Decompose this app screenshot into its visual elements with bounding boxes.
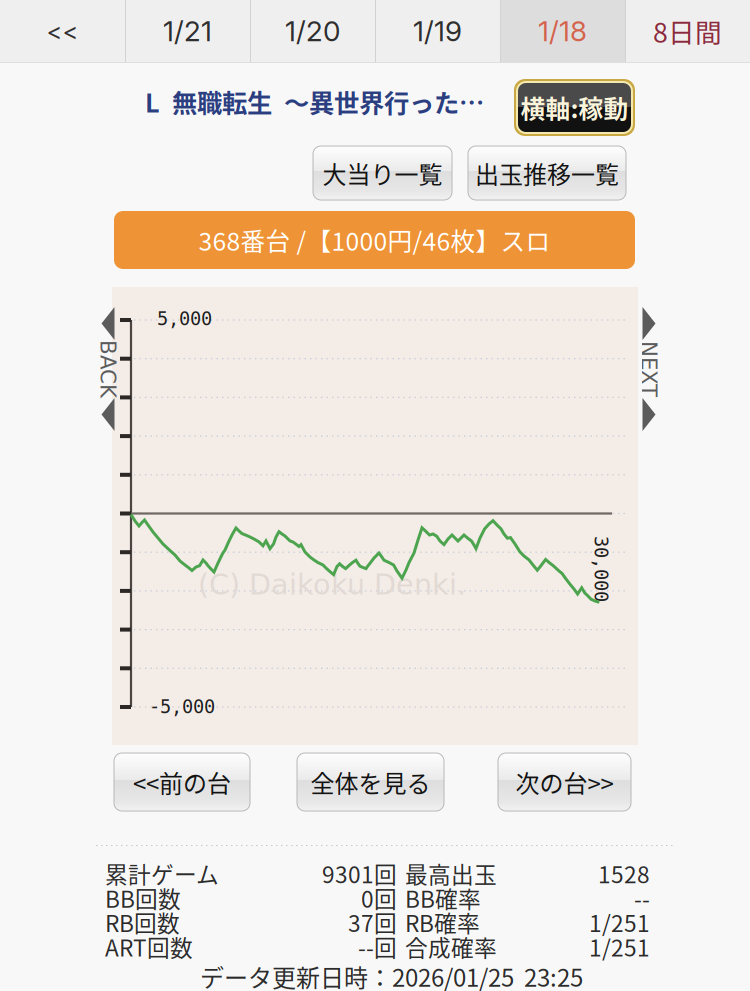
staticText: L 無職転生 〜異世界行った…	[145, 83, 484, 120]
staticText: 1/251	[589, 906, 650, 939]
staticText: 横軸:稼動	[520, 90, 628, 125]
staticText: 最高出玉	[405, 857, 497, 890]
staticText: 5,000	[157, 308, 212, 330]
staticText: 全体を見る	[310, 765, 430, 799]
button[interactable]: 1/21	[125, 0, 250, 62]
button[interactable]: 1/19	[375, 0, 500, 62]
staticText: 累計ゲーム	[105, 857, 219, 890]
staticText: 0回	[361, 881, 397, 914]
button[interactable]: <<前の台	[114, 753, 250, 811]
button[interactable]: 全体を見る	[297, 753, 444, 811]
staticText: 368番台 /【1000円/46枚】スロ	[198, 222, 550, 258]
staticText: NEXT	[621, 357, 677, 381]
staticText: (C) Daikoku Denki.	[198, 568, 466, 601]
staticText: BACK	[79, 357, 137, 381]
staticText: RB確率	[405, 906, 480, 939]
button[interactable]: 横軸:稼動	[514, 79, 635, 136]
button[interactable]: Back	[98, 307, 118, 431]
staticText: --	[634, 881, 650, 914]
button[interactable]: 大当り一覧	[313, 146, 452, 200]
button[interactable]: 1/20	[250, 0, 375, 62]
button[interactable]: Next	[639, 307, 659, 431]
staticText: --回	[358, 930, 397, 963]
button[interactable]: 次の台>>	[498, 753, 631, 811]
staticText: 次の台>>	[515, 765, 613, 799]
staticText: 1/20	[285, 14, 340, 48]
staticText: 大当り一覧	[322, 156, 442, 190]
staticText: 出玉推移一覧	[475, 156, 619, 190]
staticText: BB確率	[405, 881, 481, 914]
staticText: ART回数	[105, 930, 193, 963]
staticText: 1/19	[413, 14, 462, 48]
staticText: -5,000	[149, 696, 215, 718]
button[interactable]: 1/18	[500, 0, 625, 62]
staticText: 1/251	[589, 930, 650, 963]
staticText: 1528	[598, 857, 650, 890]
staticText: 9301回	[322, 857, 397, 890]
button[interactable]: 8日間	[625, 0, 750, 62]
staticText: BB回数	[105, 881, 181, 914]
staticText: データ更新日時：2026/01/25 23:25	[200, 959, 583, 991]
staticText: <<	[46, 16, 78, 45]
staticText: 1/18	[538, 14, 587, 48]
button[interactable]: 368番台 /【1000円/46枚】スロ	[114, 211, 635, 269]
staticText: <<前の台	[133, 765, 231, 799]
button[interactable]: <<	[0, 0, 125, 62]
staticText: 37回	[348, 906, 397, 939]
staticText: 合成確率	[405, 930, 497, 963]
staticText: 1/21	[163, 14, 212, 48]
staticText: 8日間	[653, 12, 722, 50]
staticText: RB回数	[105, 906, 180, 939]
button[interactable]: 出玉推移一覧	[468, 146, 626, 200]
staticText: 30,000	[568, 558, 634, 580]
